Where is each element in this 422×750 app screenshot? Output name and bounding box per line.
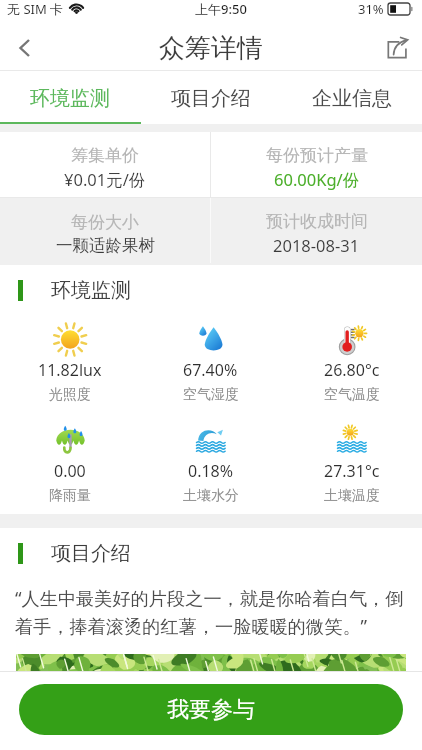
staticText: 环境监测 [30,86,110,111]
staticText: 光照度 [49,386,91,404]
staticText: 一颗适龄果树 [56,235,155,256]
button[interactable]: 67.40% [140,324,281,404]
staticText: 上午9:50 [195,0,247,18]
button[interactable]: 每份大小 [0,198,210,263]
button[interactable]: 环境监测 [0,71,140,124]
staticText: 0.18% [188,460,234,482]
staticText: ¥0.01元/份 [64,168,146,191]
button[interactable]: 11.82lux [0,324,140,404]
button[interactable]: 我要参与 [19,684,403,735]
staticText: 60.00Kg/份 [274,168,360,191]
staticText: 筹集单价 [71,145,139,166]
button[interactable]: 27.31°c [281,425,422,505]
button[interactable]: 26.80°c [281,324,422,404]
button[interactable]: 预计收成时间 [211,198,422,263]
staticText: “人生中最美好的片段之一，就是你哈着白气，倒 着手，捧着滚烫的红薯，一脸暖暖的微… [15,586,404,639]
staticText: 11.82lux [38,359,102,381]
staticText: 每份大小 [71,212,139,233]
staticText: 无 SIM 卡 [7,0,64,18]
staticText: 项目介绍 [51,541,131,566]
staticText: 空气湿度 [183,386,239,404]
button[interactable]: 0.18% [140,425,281,505]
button[interactable]: Share [374,26,422,70]
button[interactable]: 企业信息 [281,71,422,124]
staticText: 项目介绍 [171,86,251,111]
staticText: 每份预计产量 [266,145,368,166]
staticText: 0.00 [54,460,86,482]
staticText: 26.80°c [324,359,380,381]
staticText: 土壤温度 [324,487,380,505]
button[interactable]: Back [0,26,48,70]
staticText: 土壤水分 [183,487,239,505]
staticText: 我要参与 [167,696,255,724]
button[interactable]: 项目介绍 [140,71,281,124]
staticText: 环境监测 [51,278,131,303]
button[interactable]: 0.00 [0,425,140,505]
staticText: 预计收成时间 [266,211,368,232]
staticText: 空气温度 [324,386,380,404]
staticText: 降雨量 [49,487,91,505]
button[interactable]: 筹集单价 [0,132,210,197]
staticText: 众筹详情 [159,32,263,65]
staticText: 27.31°c [324,460,380,482]
staticText: 67.40% [183,359,238,381]
button[interactable]: 每份预计产量 [211,132,422,197]
staticText: 31% [358,0,384,18]
staticText: 企业信息 [312,86,392,111]
staticText: 2018-08-31 [273,234,360,256]
